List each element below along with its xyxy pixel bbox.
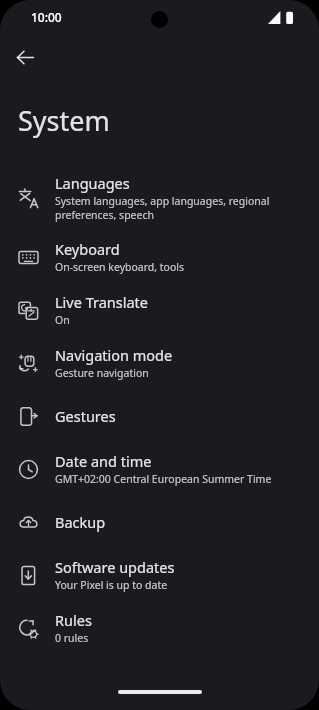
staticText: GMT+02:00 Central European Summer Time (55, 472, 272, 486)
staticText: 10:00 (31, 9, 62, 25)
staticText: System (18, 102, 110, 139)
staticText: Live Translate (55, 292, 149, 312)
button[interactable]: Gestures (0, 389, 319, 442)
staticText: Navigation mode (55, 345, 173, 365)
staticText: On (55, 313, 70, 327)
staticText: Languages (55, 173, 130, 193)
button[interactable]: Date and time (0, 442, 319, 495)
staticText: Keyboard (55, 239, 120, 259)
button[interactable]: Software updates (0, 548, 319, 601)
staticText: On-screen keyboard, tools (55, 260, 185, 274)
staticText: 0 rules (55, 631, 89, 645)
button[interactable]: Navigation mode (0, 336, 319, 389)
staticText: Gestures (55, 406, 116, 426)
staticText: Your Pixel is up to date (55, 578, 168, 592)
staticText: Software updates (55, 557, 175, 577)
button[interactable]: Back (8, 40, 42, 74)
button[interactable]: Rules (0, 601, 319, 654)
button[interactable]: Keyboard (0, 230, 319, 283)
button[interactable]: Live Translate (0, 283, 319, 336)
button[interactable]: Languages (0, 165, 319, 230)
staticText: Backup (55, 512, 106, 532)
staticText: Rules (55, 610, 92, 630)
staticText: Date and time (55, 451, 152, 471)
button[interactable]: Backup (0, 495, 319, 548)
staticText: Gesture navigation (55, 366, 149, 380)
staticText: System languages, app languages, regiona… (55, 194, 303, 222)
